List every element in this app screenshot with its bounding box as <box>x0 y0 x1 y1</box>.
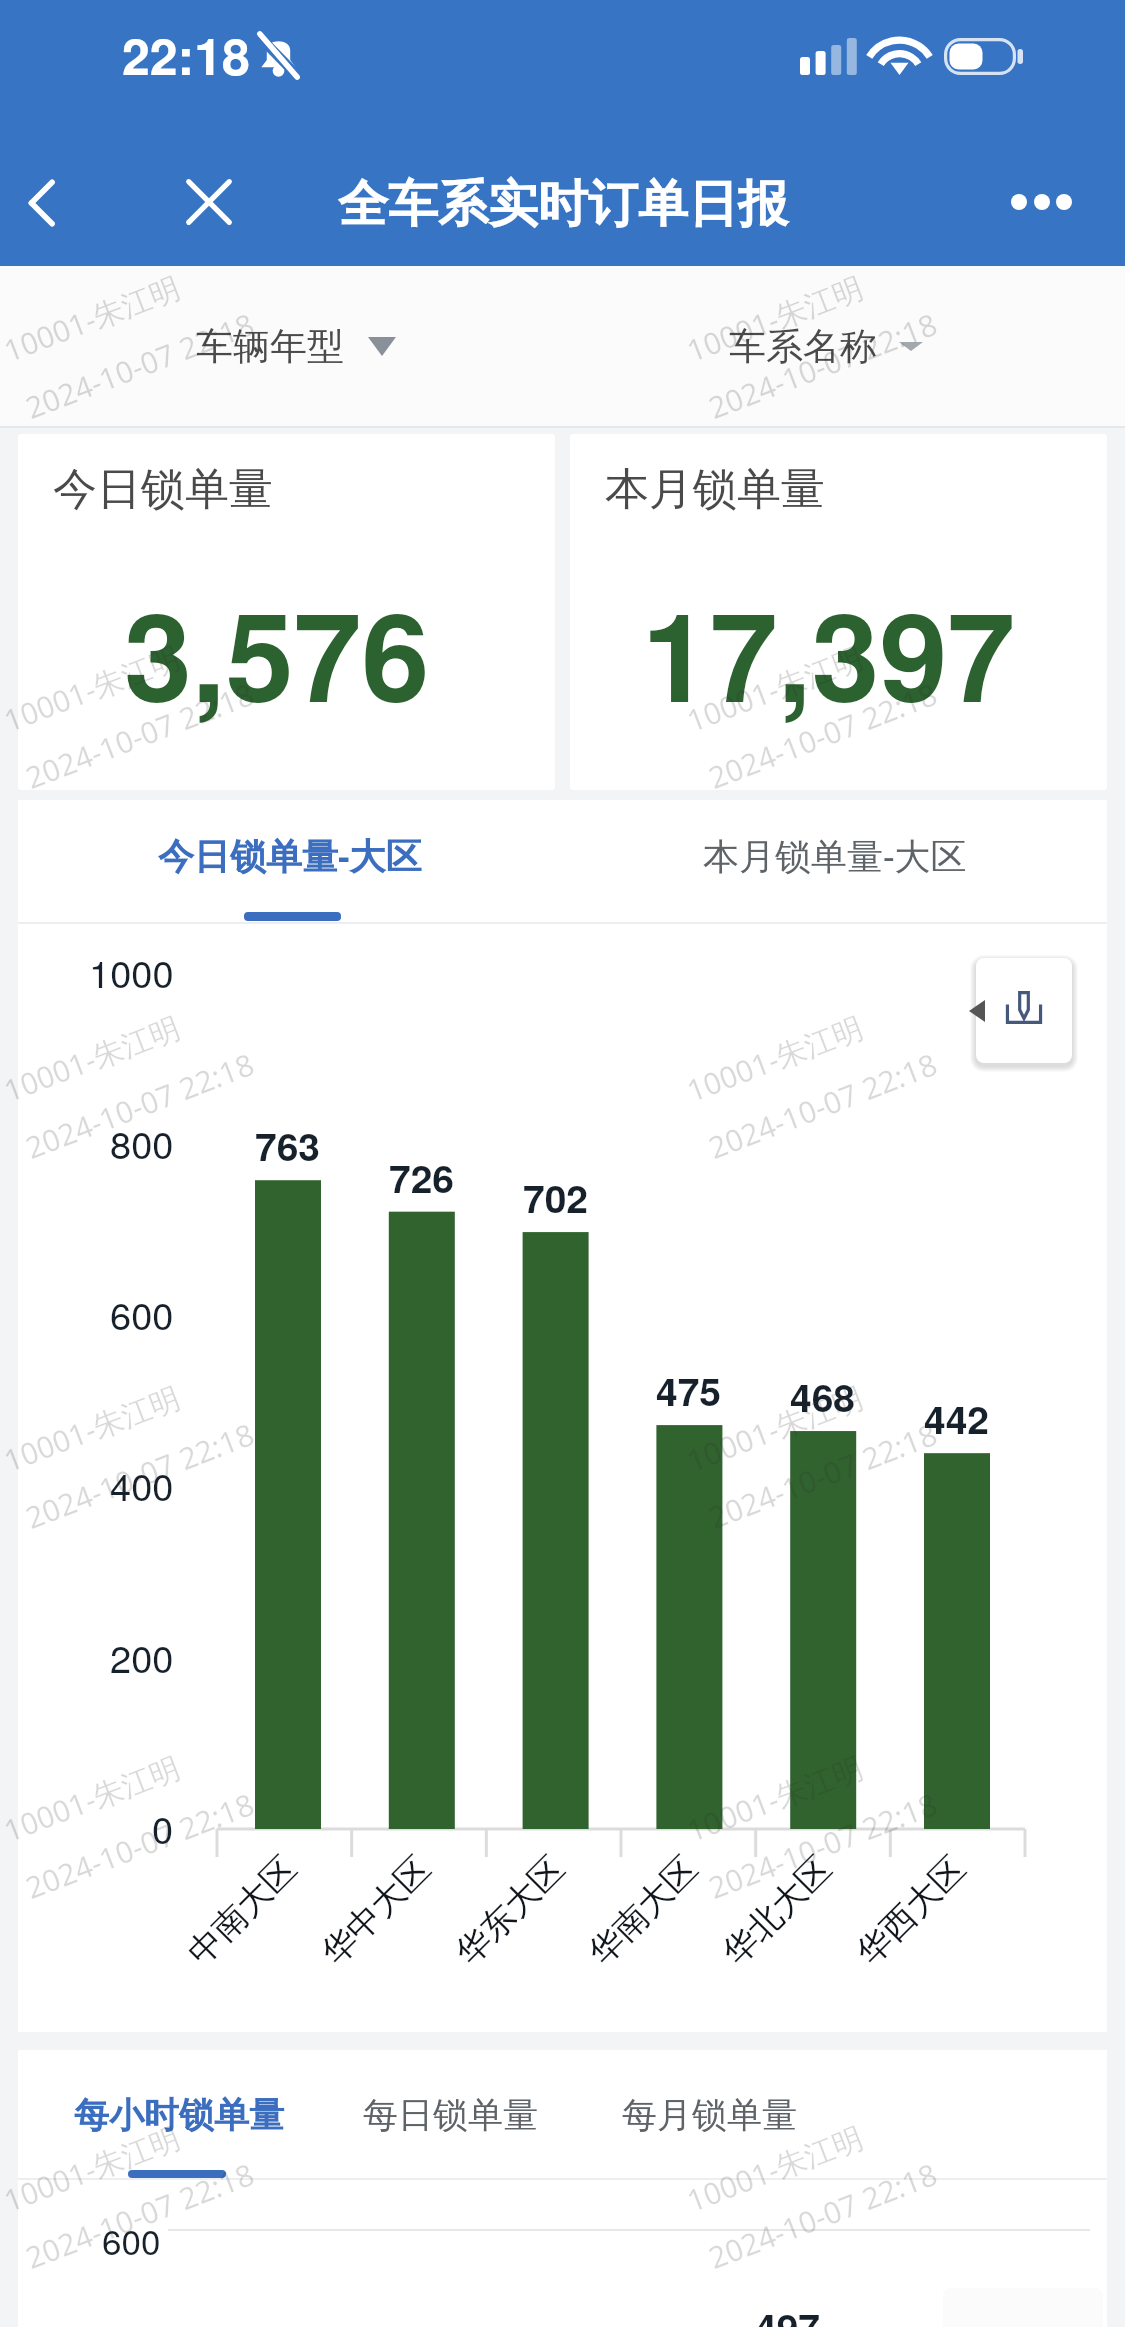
button[interactable]: 今日锁单量 <box>18 434 555 790</box>
button[interactable]: Close <box>174 167 244 237</box>
staticText: 763 <box>255 1117 321 1173</box>
staticText: 200 <box>110 1629 174 1683</box>
staticText: 2024-10-07 22:18 <box>703 1043 943 1168</box>
staticText: 10001-朱江明 <box>0 1746 186 1851</box>
staticText: 442 <box>924 1390 990 1446</box>
staticText: 10001-朱江明 <box>681 1376 869 1481</box>
staticText: 726 <box>389 1149 455 1205</box>
staticText: 17,397 <box>642 565 1016 740</box>
staticText: 10001-朱江明 <box>681 1746 869 1851</box>
staticText: 468 <box>790 1368 856 1424</box>
staticText: 华中大区 <box>313 1847 439 1974</box>
staticText: 2024-10-07 22:18 <box>20 2153 260 2278</box>
button[interactable]: Download <box>976 958 1072 1063</box>
button[interactable]: 车系名称 <box>729 323 923 370</box>
staticText: 10001-朱江明 <box>681 266 869 371</box>
button[interactable]: More options <box>996 184 1088 220</box>
staticText: 2024-10-07 22:18 <box>20 673 260 798</box>
staticText: 本月锁单量 <box>605 462 825 517</box>
staticText: 2024-10-07 22:18 <box>703 673 943 798</box>
staticText: 0 <box>152 1800 174 1854</box>
staticText: 10001-朱江明 <box>681 636 869 741</box>
staticText: 10001-朱江明 <box>0 266 186 371</box>
staticText: 10001-朱江明 <box>681 2116 869 2221</box>
staticText: 全车系实时订单日报 <box>338 173 788 236</box>
staticText: 702 <box>523 1169 589 1225</box>
staticText: 本月锁单量-大区 <box>703 831 967 880</box>
staticText: 10001-朱江明 <box>681 1006 869 1111</box>
staticText: 华南大区 <box>580 1847 706 1974</box>
staticText: 华东大区 <box>447 1847 573 1974</box>
button[interactable]: Back <box>7 166 81 240</box>
staticText: 今日锁单量 <box>53 462 273 517</box>
button[interactable]: 本月锁单量 <box>570 434 1107 790</box>
staticText: 每月锁单量 <box>622 2093 797 2137</box>
staticText: 华北大区 <box>714 1847 840 1974</box>
staticText: 今日锁单量-大区 <box>158 831 422 880</box>
staticText: 400 <box>110 1457 174 1511</box>
staticText: 2024-10-07 22:18 <box>20 1043 260 1168</box>
staticText: 2024-10-07 22:18 <box>703 303 943 428</box>
staticText: 22:18 <box>122 19 250 91</box>
staticText: 800 <box>110 1115 174 1169</box>
staticText: 中南大区 <box>179 1847 305 1974</box>
staticText: 1000 <box>89 944 174 998</box>
staticText: 497 <box>755 2298 821 2327</box>
staticText: 600 <box>110 1286 174 1340</box>
button[interactable]: 每月锁单量 <box>622 2093 797 2137</box>
staticText: 10001-朱江明 <box>0 1376 186 1481</box>
staticText: 2024-10-07 22:18 <box>20 1413 260 1538</box>
button[interactable]: 本月锁单量-大区 <box>563 800 1107 924</box>
staticText: 车系名称 <box>729 323 877 370</box>
button[interactable]: 今日锁单量-大区 <box>18 800 562 924</box>
staticText: 2024-10-07 22:18 <box>703 2153 943 2278</box>
button[interactable]: 车辆年型 <box>196 323 396 370</box>
staticText: 2024-10-07 22:18 <box>703 1413 943 1538</box>
staticText: 2024-10-07 22:18 <box>20 1783 260 1908</box>
staticText: 2024-10-07 22:18 <box>20 303 260 428</box>
staticText: 每小时锁单量 <box>74 2093 284 2137</box>
staticText: 每日锁单量 <box>363 2093 538 2137</box>
staticText: 华西大区 <box>848 1847 974 1974</box>
button[interactable]: 每小时锁单量 <box>74 2093 284 2137</box>
staticText: 10001-朱江明 <box>0 2116 186 2221</box>
staticText: 475 <box>656 1362 722 1418</box>
staticText: 10001-朱江明 <box>0 636 186 741</box>
staticText: 3,576 <box>124 565 430 740</box>
button[interactable]: 每日锁单量 <box>363 2093 538 2137</box>
staticText: 600 <box>102 2215 161 2265</box>
staticText: 10001-朱江明 <box>0 1006 186 1111</box>
staticText: 2024-10-07 22:18 <box>703 1783 943 1908</box>
staticText: 车辆年型 <box>196 323 344 370</box>
